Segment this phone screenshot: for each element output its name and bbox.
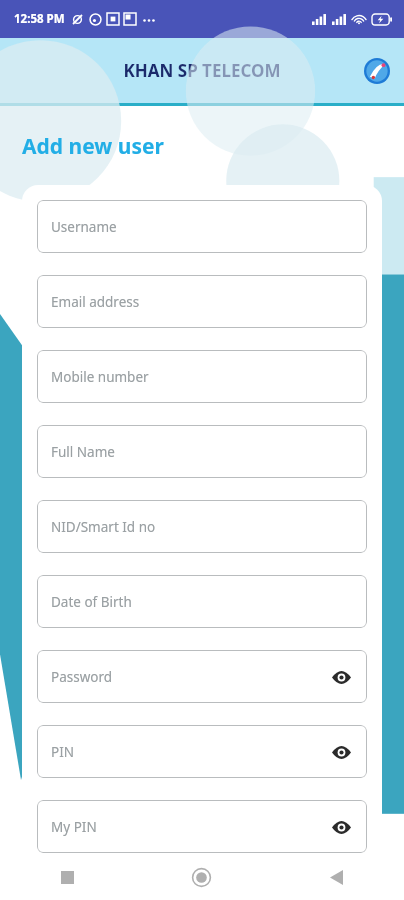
button[interactable]: App logo bbox=[360, 54, 394, 88]
staticText: Username bbox=[51, 218, 117, 236]
staticText: Email address bbox=[51, 293, 140, 311]
staticText: 12:58 PM bbox=[14, 11, 65, 27]
button[interactable]: Home bbox=[134, 855, 269, 900]
button[interactable]: Back bbox=[269, 855, 404, 900]
staticText: Date of Birth bbox=[51, 593, 132, 611]
staticText: Add new user bbox=[22, 132, 164, 161]
button[interactable]: Email address bbox=[37, 275, 367, 328]
staticText: KHAN SP TELECOM bbox=[123, 59, 281, 82]
button[interactable]: NID/Smart Id no bbox=[37, 500, 367, 553]
button[interactable]: Mobile number bbox=[37, 350, 367, 403]
button[interactable]: My PIN bbox=[37, 800, 367, 853]
button[interactable]: Show My PIN bbox=[325, 811, 357, 843]
staticText: My PIN bbox=[51, 818, 97, 836]
button[interactable]: Recents bbox=[0, 855, 134, 900]
button[interactable]: Password bbox=[37, 650, 367, 703]
staticText: PIN bbox=[51, 743, 75, 761]
button[interactable]: PIN bbox=[37, 725, 367, 778]
staticText: Password bbox=[51, 668, 113, 686]
staticText: Mobile number bbox=[51, 368, 149, 386]
button[interactable]: Show PIN bbox=[325, 736, 357, 768]
button[interactable]: Full Name bbox=[37, 425, 367, 478]
button[interactable]: Username bbox=[37, 200, 367, 253]
staticText: NID/Smart Id no bbox=[51, 518, 156, 536]
button[interactable]: Date of Birth bbox=[37, 575, 367, 628]
staticText: Full Name bbox=[51, 443, 115, 461]
button[interactable]: Show Password bbox=[325, 661, 357, 693]
